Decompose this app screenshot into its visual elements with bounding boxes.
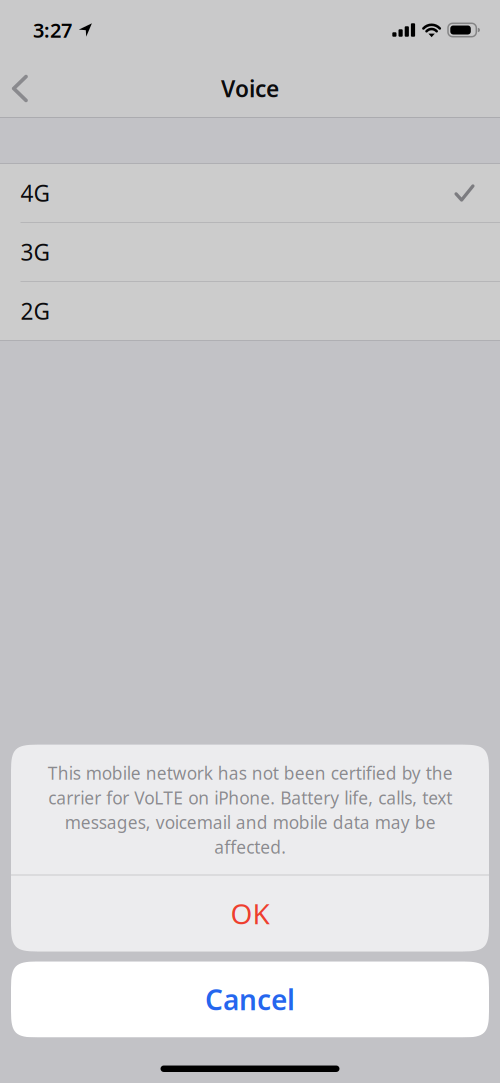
- staticText: 3:27: [33, 17, 72, 43]
- staticText: OK: [230, 895, 269, 932]
- staticText: Cancel: [205, 981, 295, 1018]
- button[interactable]: OK: [11, 875, 489, 951]
- staticText: 4G: [20, 178, 50, 208]
- staticText: This mobile network has not been certifi…: [47, 762, 452, 858]
- staticText: 2G: [20, 296, 50, 326]
- staticText: Voice: [221, 73, 279, 103]
- button[interactable]: Cancel: [11, 961, 489, 1037]
- button[interactable]: Back: [0, 60, 52, 117]
- staticText: 3G: [20, 237, 50, 267]
- button[interactable]: 2G: [0, 282, 500, 340]
- button[interactable]: 3G: [0, 223, 500, 281]
- button[interactable]: 4G: [0, 164, 500, 222]
